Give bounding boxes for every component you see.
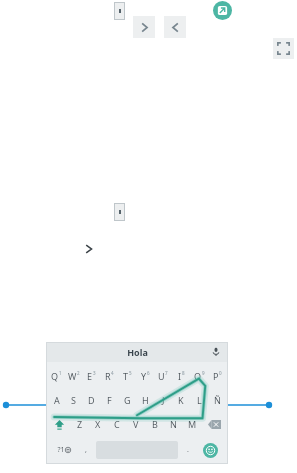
- staticText: ?1: [57, 445, 65, 455]
- staticText: W: [68, 370, 77, 382]
- button[interactable]: N: [164, 412, 183, 436]
- staticText: F: [107, 394, 112, 406]
- staticText: 7: [165, 370, 168, 376]
- button[interactable]: Back: [164, 16, 186, 38]
- button[interactable]: Backspace: [202, 412, 226, 436]
- button[interactable]: Z: [71, 412, 89, 436]
- button[interactable]: ?1: [49, 438, 78, 462]
- staticText: U: [158, 370, 165, 382]
- button[interactable]: .: [180, 438, 196, 462]
- button[interactable]: I: [172, 364, 190, 388]
- button[interactable]: D: [82, 388, 100, 412]
- button[interactable]: Expand: [273, 38, 294, 59]
- button[interactable]: R: [100, 364, 118, 388]
- staticText: D: [88, 394, 95, 406]
- staticText: 8: [182, 370, 185, 376]
- staticText: 3: [93, 370, 96, 376]
- staticText: J: [162, 394, 165, 406]
- button[interactable]: Q: [48, 364, 65, 388]
- button[interactable]: Forward: [133, 16, 155, 38]
- staticText: X: [95, 418, 101, 430]
- button[interactable]: Y: [136, 364, 154, 388]
- staticText: R: [105, 370, 111, 382]
- button[interactable]: Next: [80, 240, 98, 258]
- staticText: A: [54, 394, 60, 406]
- staticText: L: [197, 394, 202, 406]
- staticText: Ñ: [214, 394, 221, 406]
- staticText: 2: [77, 370, 80, 376]
- button[interactable]: P: [208, 364, 226, 388]
- button[interactable]: G: [118, 388, 136, 412]
- button[interactable]: M: [183, 412, 202, 436]
- button[interactable]: S: [65, 388, 82, 412]
- button[interactable]: ,: [78, 438, 94, 462]
- staticText: 5: [129, 370, 132, 376]
- button[interactable]: E: [82, 364, 100, 388]
- button[interactable]: L: [190, 388, 208, 412]
- button[interactable]: B: [145, 412, 164, 436]
- button[interactable]: A: [48, 388, 65, 412]
- staticText: C: [114, 418, 120, 430]
- button[interactable]: Open app: [213, 1, 232, 20]
- staticText: ,: [85, 445, 87, 455]
- button[interactable]: Emoji: [203, 443, 218, 458]
- button[interactable]: Toolbar button: [114, 2, 125, 20]
- button[interactable]: O: [190, 364, 208, 388]
- button[interactable]: U: [154, 364, 172, 388]
- staticText: Y: [141, 370, 147, 382]
- button[interactable]: F: [100, 388, 118, 412]
- staticText: B: [152, 418, 158, 430]
- staticText: K: [178, 394, 184, 406]
- staticText: S: [71, 394, 76, 406]
- staticText: Hola: [127, 346, 148, 358]
- button[interactable]: W: [65, 364, 82, 388]
- staticText: T: [123, 370, 129, 382]
- button[interactable]: Hola: [46, 342, 228, 362]
- button[interactable]: K: [172, 388, 190, 412]
- button[interactable]: Toolbar button: [114, 203, 125, 221]
- staticText: N: [170, 418, 177, 430]
- staticText: 4: [111, 370, 114, 376]
- button[interactable]: X: [89, 412, 107, 436]
- staticText: 0: [219, 370, 222, 376]
- button[interactable]: J: [154, 388, 172, 412]
- staticText: 6: [147, 370, 150, 376]
- staticText: I: [178, 370, 182, 382]
- staticText: M: [188, 418, 197, 430]
- staticText: E: [87, 370, 93, 382]
- button[interactable]: T: [118, 364, 136, 388]
- button[interactable]: V: [126, 412, 145, 436]
- staticText: 1: [59, 370, 62, 376]
- button[interactable]: C: [107, 412, 126, 436]
- staticText: G: [124, 394, 131, 406]
- staticText: Q: [51, 370, 59, 382]
- staticText: V: [133, 418, 139, 430]
- button[interactable]: Voice input: [210, 346, 222, 358]
- staticText: Z: [77, 418, 83, 430]
- staticText: 9: [202, 370, 205, 376]
- button[interactable]: H: [136, 388, 154, 412]
- staticText: .: [187, 445, 189, 455]
- staticText: H: [142, 394, 149, 406]
- button[interactable]: Shift: [48, 412, 71, 436]
- staticText: P: [213, 370, 219, 382]
- staticText: O: [194, 370, 202, 382]
- button[interactable]: Ñ: [208, 388, 226, 412]
